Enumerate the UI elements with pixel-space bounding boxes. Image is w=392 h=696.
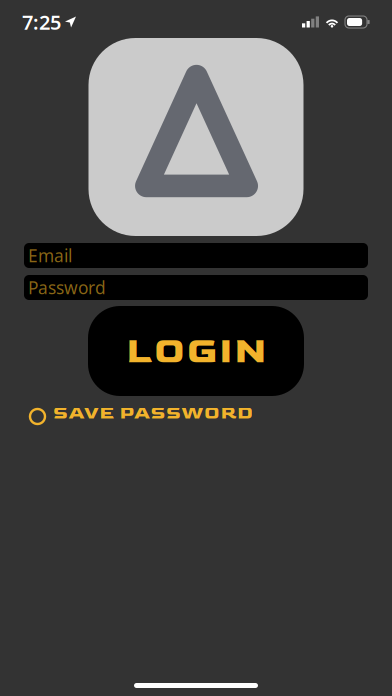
staticText: SAVE PASSWORD	[53, 402, 253, 424]
staticText: Password	[28, 276, 106, 299]
button[interactable]: SAVE PASSWORD	[0, 398, 392, 428]
button[interactable]: LOGIN	[88, 306, 304, 396]
staticText: 7:25	[22, 9, 61, 35]
staticText: Email	[28, 244, 72, 267]
staticText: LOGIN	[126, 329, 266, 373]
